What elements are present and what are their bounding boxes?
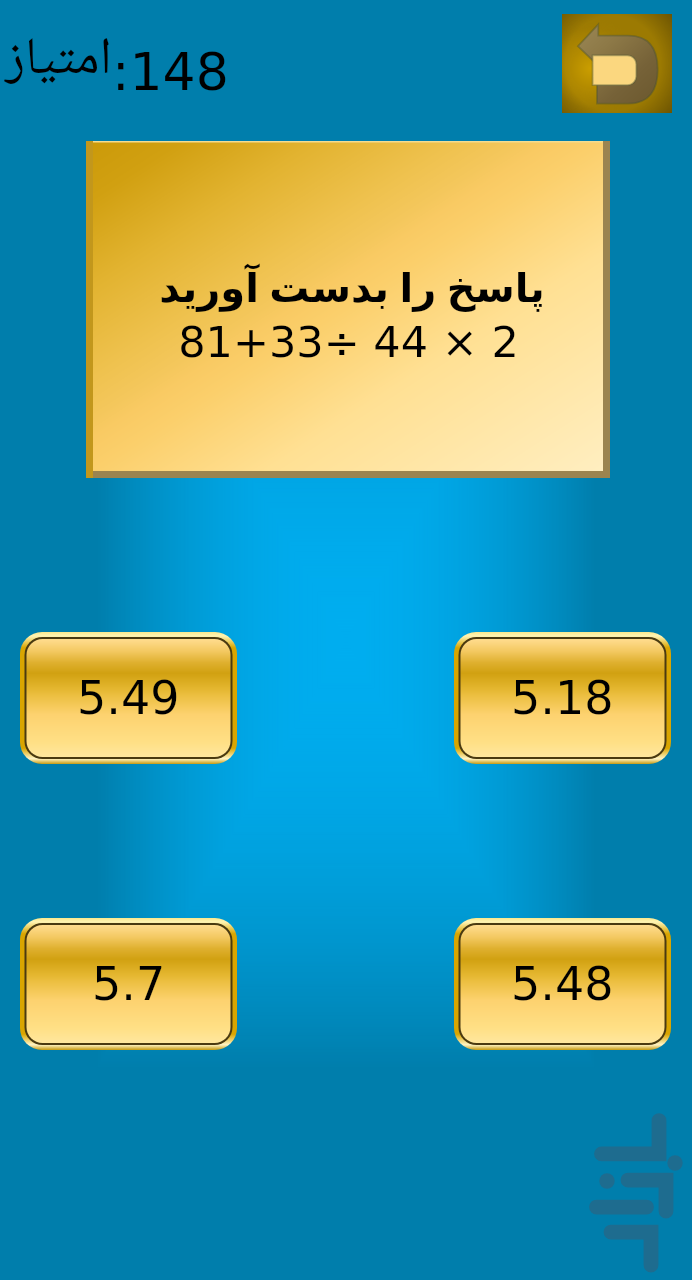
staticText: 5.18 <box>511 671 614 725</box>
staticText: :148 <box>112 42 229 103</box>
staticText: 81+33÷ 44 × 2 <box>178 317 519 367</box>
button[interactable]: 5.48 <box>454 918 671 1050</box>
button[interactable]: 5.49 <box>20 632 237 764</box>
staticText: پاسخ را بدست آورید <box>159 259 545 313</box>
staticText: 5.49 <box>77 671 180 725</box>
staticText: 5.48 <box>511 957 614 1011</box>
button[interactable]: Back <box>562 14 672 113</box>
button[interactable]: 5.18 <box>454 632 671 764</box>
button[interactable]: 5.7 <box>20 918 237 1050</box>
staticText: 5.7 <box>92 957 166 1011</box>
staticText: امتیاز <box>5 17 112 106</box>
